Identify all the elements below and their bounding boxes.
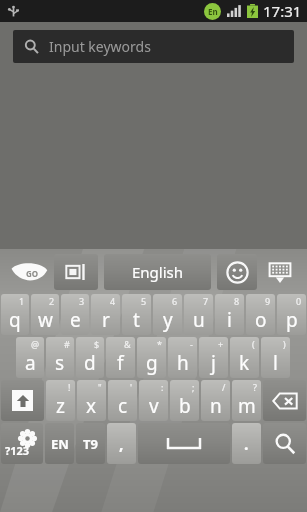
staticText: b [179, 393, 191, 419]
staticText: / [222, 381, 226, 393]
button[interactable]: / [201, 380, 230, 421]
staticText: & [124, 338, 131, 350]
button[interactable]: @ [16, 337, 44, 378]
button[interactable]: ' [108, 380, 137, 421]
staticText: n [210, 393, 222, 419]
staticText: 2 [49, 295, 55, 307]
button[interactable]: Emoji [217, 254, 257, 290]
button[interactable]: Input keywords [13, 30, 294, 63]
button[interactable]: EN [45, 423, 74, 464]
staticText: ! [68, 381, 71, 393]
staticText: g [146, 350, 158, 376]
staticText: 5 [141, 295, 147, 307]
staticText: @ [31, 338, 40, 350]
button[interactable]: T9 [76, 423, 105, 464]
staticText: a [25, 350, 36, 376]
staticText: 4 [110, 295, 116, 307]
button[interactable]: Switch layout [54, 254, 98, 290]
button[interactable]: GO Keyboard [4, 253, 54, 291]
staticText: l [273, 350, 278, 376]
button[interactable]: & [106, 337, 135, 378]
staticText: m [238, 393, 256, 419]
button[interactable]: ? [232, 380, 261, 421]
staticText: x [86, 393, 97, 419]
staticText: - [190, 338, 193, 350]
staticText: EN [51, 435, 69, 453]
button[interactable]: Search [263, 423, 306, 464]
button[interactable]: , [107, 423, 136, 464]
staticText: q [9, 307, 21, 333]
button[interactable]: 5 [122, 294, 151, 335]
button[interactable]: # [46, 337, 74, 378]
button[interactable]: Hide keyboard [257, 253, 303, 291]
staticText: 0 [296, 295, 302, 307]
staticText: 6 [172, 295, 178, 307]
staticText: . [244, 433, 249, 455]
button[interactable]: Backspace [263, 380, 306, 421]
staticText: English [132, 262, 184, 282]
staticText: ?123 [5, 443, 30, 458]
button[interactable]: $ [76, 337, 104, 378]
button[interactable]: 9 [246, 294, 275, 335]
staticText: ? [253, 381, 257, 393]
staticText: : [161, 381, 164, 393]
button[interactable]: . [232, 423, 261, 464]
button[interactable]: * [137, 337, 166, 378]
staticText: * [157, 338, 162, 350]
staticText: c [118, 393, 128, 419]
button[interactable]: " [77, 380, 106, 421]
staticText: " [98, 381, 102, 393]
staticText: En [208, 6, 218, 17]
staticText: GO [26, 268, 39, 279]
staticText: y [163, 307, 173, 333]
staticText: 1 [19, 295, 25, 307]
button[interactable]: English [104, 254, 211, 290]
staticText: t [133, 307, 140, 333]
staticText: d [84, 350, 96, 376]
button[interactable]: 7 [184, 294, 213, 335]
staticText: 9 [265, 295, 271, 307]
button[interactable]: - [168, 337, 197, 378]
button[interactable]: ; [170, 380, 199, 421]
staticText: , [119, 433, 124, 455]
staticText: s [55, 350, 65, 376]
staticText: 8 [234, 295, 240, 307]
staticText: ; [192, 381, 195, 393]
button[interactable]: Symbols and settings [1, 423, 43, 464]
staticText: $ [94, 338, 100, 350]
button[interactable]: 0 [277, 294, 306, 335]
button[interactable]: 1 [1, 294, 29, 335]
button[interactable]: ! [46, 380, 75, 421]
staticText: ) [283, 338, 286, 350]
button[interactable]: ( [230, 337, 259, 378]
staticText: ( [252, 338, 255, 350]
staticText: Input keywords [49, 37, 151, 56]
staticText: h [177, 350, 189, 376]
staticText: v [149, 393, 159, 419]
staticText: 7 [203, 295, 209, 307]
staticText: 3 [79, 295, 85, 307]
staticText: u [193, 307, 205, 333]
staticText: + [218, 338, 224, 350]
button[interactable]: Space [138, 423, 230, 464]
button[interactable]: 8 [215, 294, 244, 335]
staticText: T9 [83, 435, 98, 453]
staticText: # [64, 338, 70, 350]
button[interactable]: Shift [1, 380, 44, 421]
staticText: o [255, 307, 267, 333]
staticText: z [56, 393, 65, 419]
button[interactable]: 6 [153, 294, 182, 335]
staticText: f [117, 350, 124, 376]
button[interactable]: 4 [91, 294, 120, 335]
button[interactable]: ) [261, 337, 290, 378]
staticText: e [70, 307, 81, 333]
staticText: i [227, 307, 232, 333]
button[interactable]: 2 [31, 294, 59, 335]
staticText: k [239, 350, 250, 376]
staticText: 17:31 [263, 1, 302, 21]
button[interactable]: + [199, 337, 228, 378]
button[interactable]: : [139, 380, 168, 421]
staticText: p [286, 307, 298, 333]
button[interactable]: 3 [61, 294, 89, 335]
staticText: r [102, 307, 110, 333]
